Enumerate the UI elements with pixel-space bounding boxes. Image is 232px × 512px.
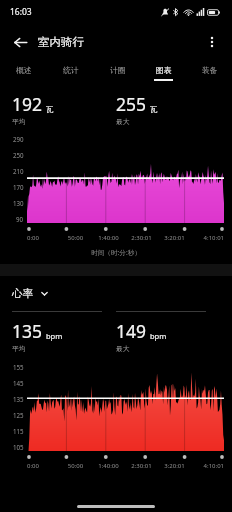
button[interactable]: 概述 <box>0 60 47 86</box>
staticText: 250 <box>13 151 24 159</box>
staticText: 130 <box>13 199 24 207</box>
staticText: 2:30:01 <box>125 234 158 242</box>
staticText: 4:10:01 <box>191 234 224 242</box>
staticText: 最大 <box>116 117 130 126</box>
staticText: 135 <box>12 319 43 343</box>
staticText: 155 <box>13 363 24 371</box>
staticText: 最大 <box>116 344 130 353</box>
staticText: 192 <box>12 92 43 116</box>
staticText: 210 <box>13 167 24 175</box>
staticText: bpm <box>46 331 63 341</box>
staticText: 90 <box>16 215 24 223</box>
staticText: 概述 <box>16 65 32 75</box>
button[interactable]: 图表 <box>140 60 186 86</box>
staticText: 图表 <box>156 65 172 75</box>
staticText: 3:20:01 <box>158 234 191 242</box>
staticText: 计圈 <box>110 65 126 75</box>
staticText: 290 <box>13 135 24 143</box>
staticText: 125 <box>13 411 24 419</box>
staticText: bpm <box>150 331 167 341</box>
staticText: 瓦 <box>46 105 54 114</box>
staticText: 16:03 <box>10 6 32 18</box>
staticText: 170 <box>13 183 24 191</box>
staticText: 255 <box>116 92 147 116</box>
staticText: 149 <box>116 319 147 343</box>
staticText: 0:00 <box>27 462 59 470</box>
button[interactable]: More options <box>197 27 227 57</box>
staticText: 2:30:01 <box>125 462 158 470</box>
staticText: 心率 <box>12 287 33 300</box>
button[interactable]: 计圈 <box>94 60 140 86</box>
staticText: 50:00 <box>59 462 92 470</box>
staticText: 1:40:00 <box>92 462 125 470</box>
button[interactable]: 装备 <box>186 60 232 86</box>
button[interactable]: Back <box>5 27 35 57</box>
staticText: 4:10:01 <box>191 462 224 470</box>
staticText: 时间（时:分:秒） <box>0 248 232 257</box>
button[interactable]: 统计 <box>47 60 94 86</box>
staticText: 3:20:01 <box>158 462 191 470</box>
staticText: 135 <box>13 395 24 403</box>
staticText: 1:40:00 <box>92 234 125 242</box>
button[interactable]: 心率 <box>12 287 49 300</box>
staticText: 装备 <box>202 65 218 75</box>
staticText: 统计 <box>63 65 79 75</box>
staticText: 平均 <box>12 117 26 126</box>
staticText: 瓦 <box>150 105 158 114</box>
staticText: 105 <box>13 443 24 451</box>
staticText: 室内骑行 <box>38 35 84 49</box>
staticText: 平均 <box>12 344 26 353</box>
staticText: 115 <box>13 427 24 435</box>
staticText: 0:00 <box>27 234 59 242</box>
staticText: 145 <box>13 379 24 387</box>
staticText: 50:00 <box>59 234 92 242</box>
